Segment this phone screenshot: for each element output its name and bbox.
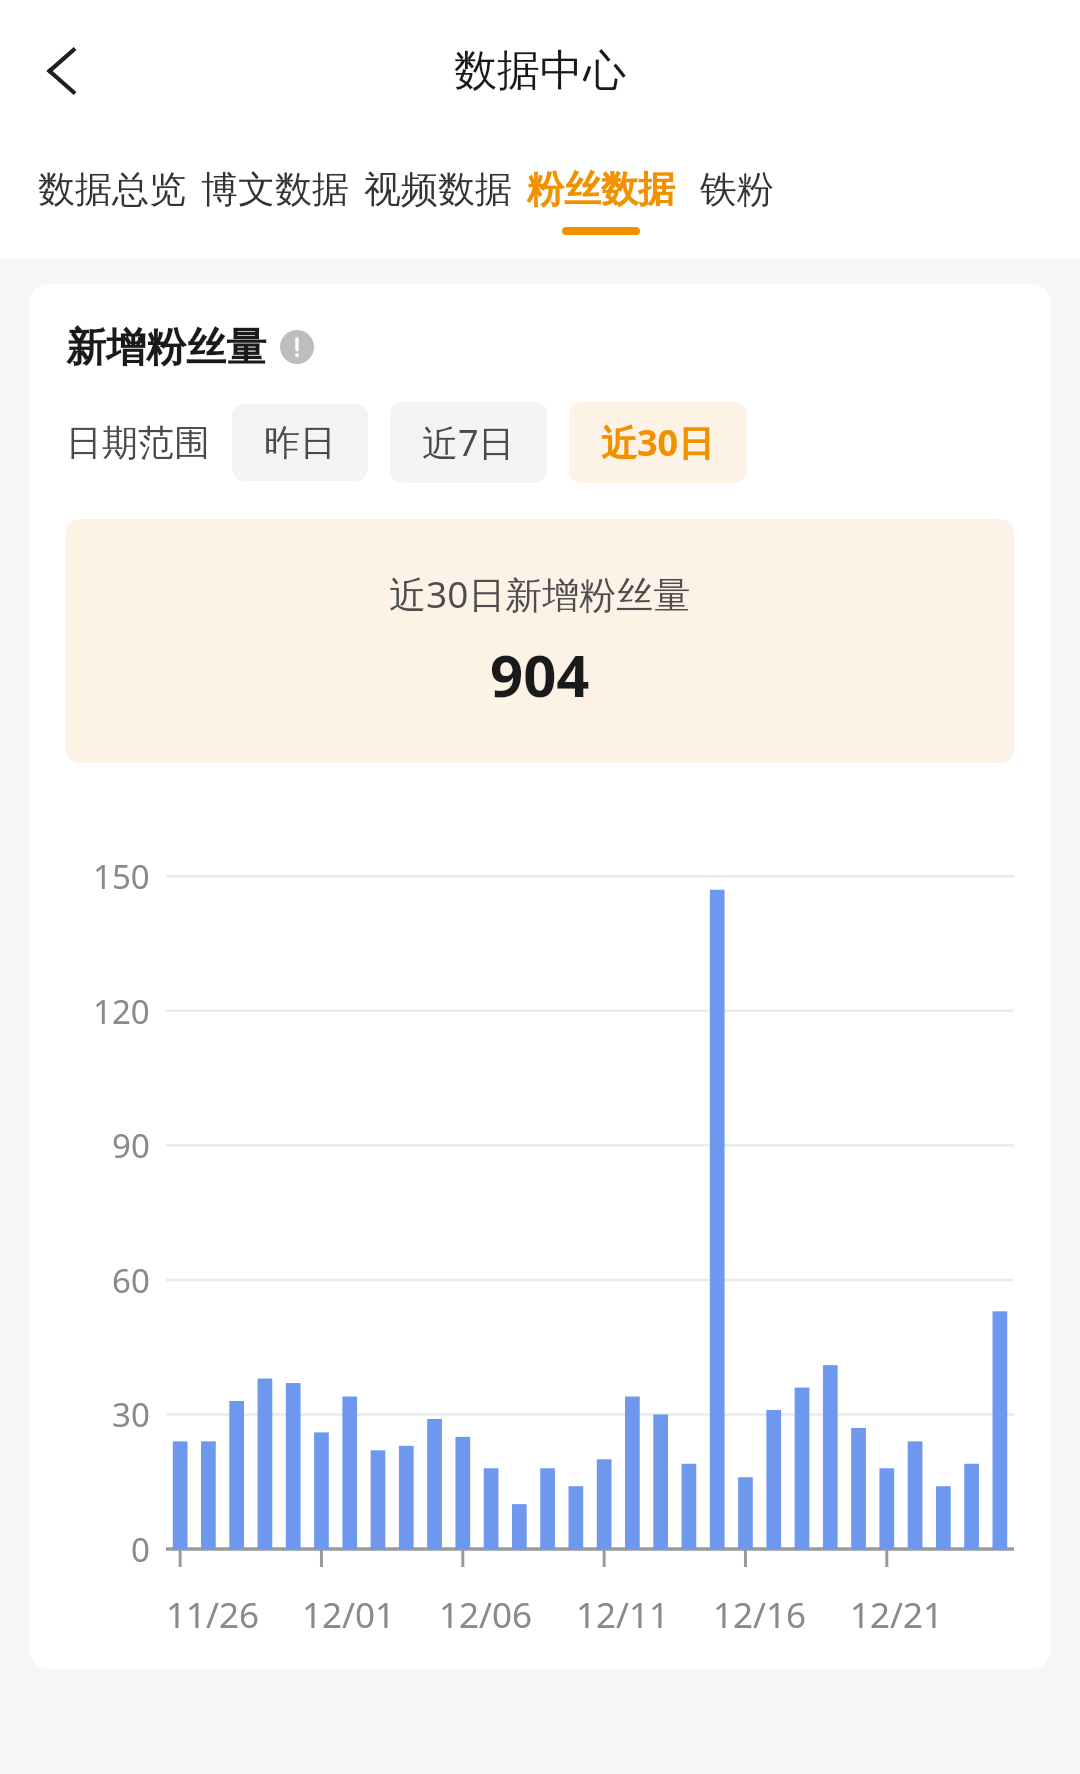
staticText: 博文数据 bbox=[201, 166, 349, 213]
staticText: 12/01 bbox=[302, 1591, 396, 1639]
button[interactable]: 数据总览 bbox=[30, 142, 193, 258]
button[interactable]: Back bbox=[18, 27, 106, 115]
staticText: 12/06 bbox=[439, 1591, 533, 1639]
staticText: 12/16 bbox=[713, 1591, 807, 1639]
staticText: 数据总览 bbox=[38, 166, 186, 213]
staticText: 0 bbox=[131, 1527, 150, 1572]
button[interactable]: 粉丝数据 bbox=[519, 142, 682, 258]
staticText: 11/26 bbox=[166, 1591, 260, 1639]
staticText: 30 bbox=[112, 1392, 150, 1437]
staticText: 近7日 bbox=[422, 418, 515, 467]
button[interactable]: 博文数据 bbox=[193, 142, 356, 258]
staticText: 904 bbox=[490, 635, 590, 714]
button[interactable]: 近7日 bbox=[390, 402, 547, 483]
staticText: 昨日 bbox=[264, 420, 336, 465]
staticText: 日期范围 bbox=[66, 420, 210, 465]
button[interactable]: 铁粉 bbox=[682, 142, 792, 258]
staticText: 铁粉 bbox=[700, 166, 774, 213]
staticText: 新增粉丝量 bbox=[66, 322, 266, 372]
staticText: 数据中心 bbox=[454, 44, 626, 98]
staticText: 粉丝数据 bbox=[527, 166, 675, 213]
button[interactable]: 近30日 bbox=[569, 402, 747, 483]
button[interactable]: 昨日 bbox=[232, 404, 368, 481]
staticText: 60 bbox=[112, 1258, 150, 1303]
staticText: 120 bbox=[93, 989, 150, 1034]
staticText: 12/21 bbox=[850, 1591, 944, 1639]
staticText: 近30日新增粉丝量 bbox=[389, 568, 691, 619]
button[interactable]: Info bbox=[280, 330, 314, 364]
staticText: 150 bbox=[93, 854, 150, 899]
button[interactable]: 视频数据 bbox=[356, 142, 519, 258]
staticText: 近30日 bbox=[601, 418, 715, 467]
staticText: 12/11 bbox=[576, 1591, 670, 1639]
staticText: 90 bbox=[112, 1123, 150, 1168]
staticText: 视频数据 bbox=[364, 166, 512, 213]
